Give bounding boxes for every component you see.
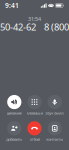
staticText: 9:41 [5,1,19,10]
staticText: 50-42-62 8 (800 [0,21,69,33]
staticText: 31:54 [28,15,41,23]
staticText: звук выкл. [45,110,64,116]
staticText: контакты [46,137,63,142]
button[interactable]: добавить [4,121,25,142]
button[interactable]: динамик [4,95,25,116]
button[interactable]: контакты [44,121,65,142]
staticText: клавиши [26,110,42,116]
staticText: добавить [6,137,22,142]
staticText: динамик [7,110,22,116]
button[interactable]: клавиши [24,95,45,116]
button[interactable]: звук выкл. [44,95,65,116]
staticText: отбой [29,137,39,142]
button[interactable]: отбой [24,121,45,142]
